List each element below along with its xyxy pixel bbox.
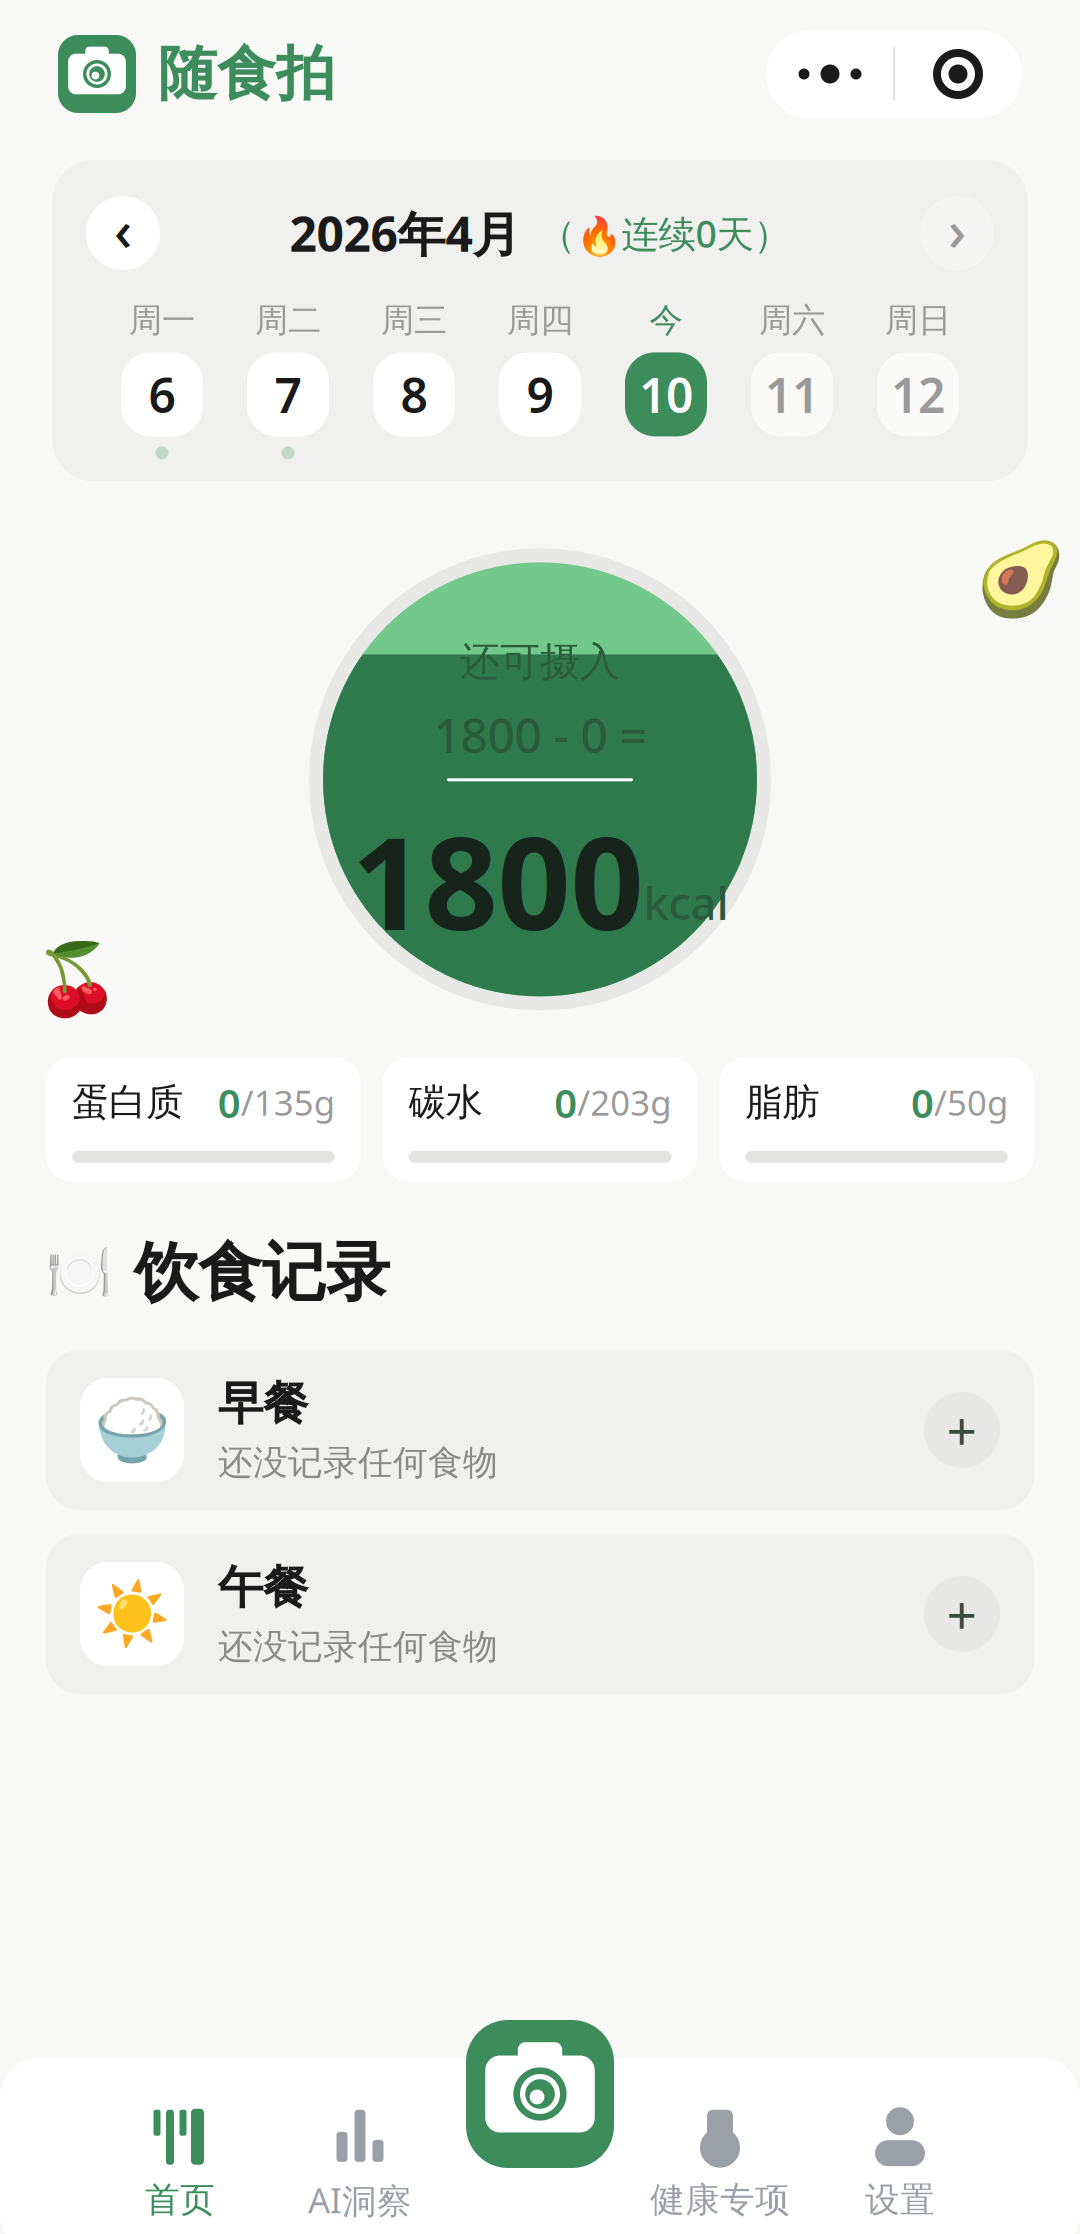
- staticText: 饮食记录: [134, 1233, 390, 1312]
- button[interactable]: Take photo: [466, 2082, 614, 2230]
- staticText: 10: [639, 362, 693, 426]
- staticText: 还可摄入: [460, 637, 620, 686]
- button[interactable]: 周三: [351, 304, 477, 459]
- button[interactable]: 🍚: [46, 1350, 1034, 1510]
- button[interactable]: Next month: [920, 196, 994, 270]
- staticText: /203g: [577, 1079, 671, 1125]
- staticText: 周二: [255, 300, 321, 341]
- staticText: 周一: [129, 300, 195, 341]
- button[interactable]: AI洞察: [270, 2105, 450, 2223]
- staticText: 周六: [759, 300, 825, 341]
- staticText: 健康专项: [650, 2179, 790, 2221]
- staticText: 🥑: [976, 538, 1066, 620]
- staticText: 11: [765, 362, 819, 426]
- staticText: 早餐: [218, 1376, 308, 1431]
- staticText: ›: [948, 192, 966, 266]
- staticText: 🍽️: [46, 1242, 112, 1303]
- button[interactable]: ☀️: [46, 1534, 1034, 1694]
- button[interactable]: More: [767, 36, 893, 112]
- staticText: 脂肪: [745, 1079, 819, 1125]
- button[interactable]: 周四: [477, 304, 603, 459]
- staticText: 🍚: [94, 1395, 170, 1465]
- staticText: 2026年4月: [289, 201, 520, 265]
- staticText: kcal: [643, 872, 728, 932]
- staticText: 0: [554, 1076, 577, 1129]
- button[interactable]: 周六: [729, 304, 855, 459]
- button[interactable]: Previous month: [86, 196, 160, 270]
- button[interactable]: 周日: [855, 304, 981, 459]
- staticText: 🍒: [34, 940, 120, 1019]
- staticText: 1800: [351, 795, 643, 965]
- button[interactable]: 周一: [99, 304, 225, 459]
- staticText: ☀️: [94, 1579, 170, 1649]
- staticText: 12: [891, 362, 945, 426]
- staticText: 6: [148, 362, 175, 426]
- button[interactable]: 今: [603, 304, 729, 459]
- staticText: /135g: [241, 1079, 335, 1125]
- staticText: ‹: [114, 192, 132, 266]
- staticText: 周日: [885, 300, 951, 341]
- button[interactable]: 设置: [810, 2107, 990, 2221]
- staticText: 周三: [381, 300, 447, 341]
- button[interactable]: 首页: [90, 2107, 270, 2221]
- staticText: 9: [526, 362, 553, 426]
- staticText: +: [946, 1395, 977, 1465]
- button[interactable]: Close: [895, 36, 1021, 112]
- staticText: 周四: [507, 300, 573, 341]
- staticText: （🔥连续0天）: [538, 208, 790, 258]
- staticText: 7: [274, 362, 301, 426]
- staticText: /50g: [934, 1079, 1008, 1125]
- staticText: 设置: [865, 2179, 935, 2221]
- staticText: 1800 - 0 =: [433, 703, 646, 766]
- button[interactable]: 周二: [225, 304, 351, 459]
- staticText: 随食拍: [158, 38, 335, 110]
- staticText: 今: [649, 300, 682, 341]
- staticText: 还没记录任何食物: [218, 1441, 498, 1484]
- button[interactable]: 健康专项: [630, 2107, 810, 2221]
- staticText: 还没记录任何食物: [218, 1625, 498, 1668]
- staticText: AI洞察: [308, 2177, 412, 2223]
- staticText: +: [946, 1579, 977, 1649]
- staticText: 碳水: [409, 1079, 483, 1125]
- staticText: 午餐: [218, 1560, 308, 1615]
- staticText: 8: [400, 362, 427, 426]
- staticText: 蛋白质: [72, 1079, 183, 1125]
- staticText: 0: [911, 1076, 934, 1129]
- staticText: 首页: [145, 2179, 215, 2221]
- staticText: 0: [218, 1076, 241, 1129]
